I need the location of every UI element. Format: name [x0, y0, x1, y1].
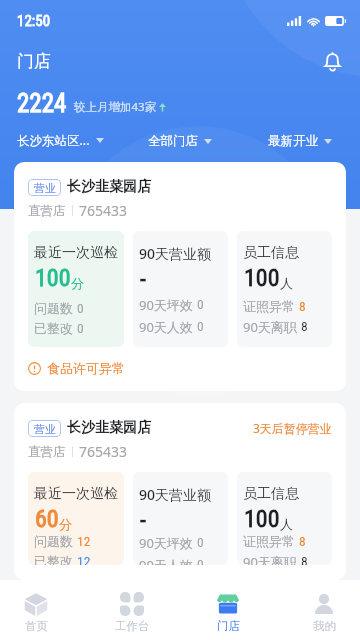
staticText: 长沙韭菜园店	[67, 178, 151, 196]
staticText: 0	[197, 556, 204, 565]
staticText: 较上月增加43家	[74, 99, 157, 115]
staticText: 0	[197, 296, 204, 312]
staticText: 门店	[17, 51, 51, 72]
staticText: 员工信息	[243, 485, 299, 503]
staticText: 90天营业额	[139, 244, 212, 263]
staticText: 2224	[17, 89, 67, 118]
staticText: 100	[35, 264, 71, 292]
staticText: 765433	[79, 201, 128, 220]
button[interactable]: 营业	[14, 162, 346, 391]
staticText: 3天后暂停营业	[253, 420, 332, 436]
staticText: 0	[197, 534, 204, 550]
staticText: 工作台	[115, 619, 150, 633]
staticText: 90天坪效	[139, 534, 193, 552]
staticText: 最新开业	[268, 133, 318, 149]
staticText: 90天人效	[139, 318, 193, 336]
button[interactable]: 通知	[320, 49, 344, 73]
staticText: 90天坪效	[139, 296, 193, 314]
staticText: 营业	[34, 181, 56, 195]
staticText: 最近一次巡检	[34, 244, 118, 262]
button[interactable]: 我的	[288, 580, 360, 640]
button[interactable]: 工作台	[96, 580, 168, 640]
staticText: 90天营业额	[139, 485, 212, 504]
staticText: 90天离职	[243, 318, 297, 336]
staticText: 已整改	[34, 553, 73, 565]
staticText: 证照异常	[243, 533, 295, 549]
staticText: 90天离职	[243, 553, 297, 565]
staticText: -	[140, 265, 146, 293]
staticText: 12	[77, 533, 91, 549]
staticText: 8	[301, 318, 308, 334]
staticText: 765433	[79, 442, 128, 461]
staticText: 8	[299, 533, 306, 549]
staticText: 分	[71, 275, 84, 291]
staticText: 已整改	[34, 320, 73, 336]
button[interactable]: 长沙东站区...	[0, 129, 120, 152]
staticText: 长沙东站区...	[17, 132, 90, 149]
staticText: 食品许可异常	[47, 360, 125, 376]
staticText: 员工信息	[243, 244, 299, 262]
staticText: 人	[280, 516, 293, 532]
button[interactable]: 全部门店	[120, 130, 240, 152]
staticText: 门店	[217, 619, 240, 633]
staticText: 人	[280, 275, 293, 291]
staticText: 8	[301, 553, 308, 565]
staticText: 90天人效	[139, 556, 193, 565]
staticText: 100	[244, 505, 280, 533]
staticText: 12:50	[17, 12, 51, 30]
staticText: 100	[244, 264, 280, 292]
staticText: 问题数	[34, 533, 73, 549]
staticText: 0	[197, 318, 204, 334]
button[interactable]: 首页	[0, 580, 72, 640]
button[interactable]: 门店	[192, 580, 264, 640]
staticText: 首页	[25, 619, 48, 633]
staticText: 60	[35, 505, 59, 533]
button[interactable]: 最新开业	[240, 130, 360, 152]
staticText: 长沙韭菜园店	[67, 419, 151, 437]
staticText: 营业	[34, 422, 56, 436]
staticText: 直营店	[28, 203, 66, 219]
staticText: 证照异常	[243, 298, 295, 314]
staticText: 0	[77, 320, 84, 336]
staticText: 分	[59, 516, 72, 532]
staticText: 问题数	[34, 300, 73, 316]
staticText: 直营店	[28, 444, 66, 460]
staticText: 8	[299, 298, 306, 314]
staticText: 12	[77, 553, 91, 565]
staticText: 全部门店	[148, 133, 198, 149]
staticText: 最近一次巡检	[34, 485, 118, 503]
button[interactable]: 营业	[14, 403, 346, 580]
staticText: 0	[77, 300, 84, 316]
staticText: -	[140, 506, 146, 534]
staticText: 我的	[313, 619, 336, 633]
